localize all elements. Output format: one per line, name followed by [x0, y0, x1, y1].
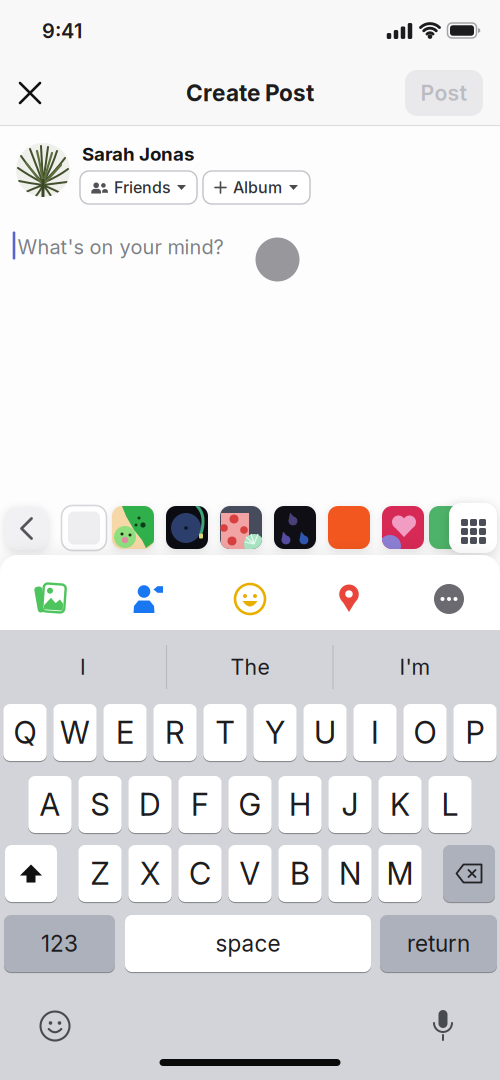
staticText: E — [116, 714, 134, 751]
button[interactable]: Album — [203, 171, 310, 204]
button[interactable]: Background option — [112, 506, 154, 549]
button[interactable]: Q — [3, 704, 47, 761]
staticText: B — [290, 855, 310, 892]
button[interactable]: Background option — [166, 506, 208, 549]
staticText: N — [339, 855, 361, 892]
staticText: S — [90, 786, 109, 823]
staticText: U — [314, 714, 336, 751]
button[interactable]: Close — [10, 73, 50, 113]
button[interactable]: F — [178, 776, 222, 833]
button[interactable]: V — [228, 845, 272, 902]
button[interactable]: Add to post — [255, 237, 299, 281]
staticText: D — [139, 786, 161, 823]
staticText: M — [386, 855, 413, 892]
button[interactable]: S — [78, 776, 122, 833]
button[interactable]: Tag People — [125, 577, 171, 621]
staticText: Y — [265, 714, 285, 751]
staticText: Q — [13, 714, 36, 751]
button[interactable]: M — [378, 845, 422, 902]
button[interactable]: A — [28, 776, 72, 833]
staticText: Z — [90, 855, 109, 892]
button[interactable]: Photo/Video — [26, 576, 74, 622]
staticText: I — [371, 714, 379, 751]
staticText: I — [80, 654, 86, 680]
button[interactable]: K — [378, 776, 422, 833]
staticText: H — [289, 786, 311, 823]
button[interactable]: Background option — [328, 506, 370, 549]
button[interactable]: Feeling/Activity — [227, 576, 273, 622]
button[interactable]: Background option — [382, 506, 424, 549]
button[interactable]: P — [453, 704, 497, 761]
button[interactable]: L — [428, 776, 472, 833]
staticText: The — [230, 654, 269, 680]
button[interactable]: Shift — [5, 845, 57, 902]
staticText: Album — [233, 178, 282, 197]
button[interactable]: Background option — [429, 506, 471, 549]
button[interactable]: Friends — [80, 171, 197, 204]
staticText: C — [189, 855, 211, 892]
staticText: I'm — [399, 654, 430, 680]
staticText: X — [140, 855, 160, 892]
staticText: Sarah Jonas — [82, 143, 194, 165]
button[interactable]: C — [178, 845, 222, 902]
staticText: W — [60, 714, 90, 751]
button[interactable]: Y — [253, 704, 297, 761]
staticText: P — [465, 714, 484, 751]
staticText: 123 — [41, 930, 78, 957]
staticText: T — [215, 714, 234, 751]
button[interactable]: Background option — [274, 506, 316, 549]
button[interactable]: Post — [405, 70, 483, 116]
staticText: space — [215, 930, 280, 957]
button[interactable]: I — [353, 704, 397, 761]
button[interactable]: X — [128, 845, 172, 902]
button[interactable]: space — [125, 915, 371, 972]
button[interactable]: More options — [426, 576, 472, 622]
button[interactable]: The — [220, 644, 279, 690]
staticText: Post — [420, 80, 467, 106]
staticText: Friends — [114, 178, 171, 197]
button[interactable]: Dictate — [424, 1002, 462, 1048]
button[interactable]: More backgrounds — [449, 503, 497, 553]
staticText: A — [39, 786, 60, 823]
staticText: L — [441, 786, 458, 823]
button[interactable]: G — [228, 776, 272, 833]
button[interactable]: O — [403, 704, 447, 761]
button[interactable]: Z — [78, 845, 122, 902]
button[interactable]: Check In — [331, 576, 367, 621]
staticText: R — [165, 714, 185, 751]
button[interactable]: T — [203, 704, 247, 761]
button[interactable]: R — [153, 704, 197, 761]
button[interactable]: Hide backgrounds — [5, 507, 48, 550]
button[interactable]: Background option — [220, 506, 262, 549]
staticText: return — [407, 930, 470, 957]
button[interactable]: Delete — [443, 845, 495, 902]
staticText: F — [191, 786, 209, 823]
button[interactable]: I'm — [389, 644, 440, 690]
button[interactable]: No background — [61, 505, 106, 550]
button[interactable]: D — [128, 776, 172, 833]
button[interactable]: Emoji — [32, 1003, 77, 1048]
staticText: O — [413, 714, 436, 751]
button[interactable]: N — [328, 845, 372, 902]
staticText: G — [238, 786, 261, 823]
button[interactable]: H — [278, 776, 322, 833]
staticText: 9:41 — [42, 19, 82, 43]
button[interactable]: B — [278, 845, 322, 902]
button[interactable]: W — [53, 704, 97, 761]
staticText: J — [341, 786, 358, 823]
staticText: K — [390, 786, 410, 823]
staticText: Create Post — [186, 80, 314, 106]
staticText: V — [239, 855, 260, 892]
button[interactable]: U — [303, 704, 347, 761]
button[interactable]: 123 — [4, 915, 115, 972]
button[interactable]: return — [380, 915, 497, 972]
button[interactable]: J — [328, 776, 372, 833]
button[interactable]: I — [70, 644, 96, 690]
button[interactable]: E — [103, 704, 147, 761]
staticText: What's on your mind? — [17, 235, 223, 259]
